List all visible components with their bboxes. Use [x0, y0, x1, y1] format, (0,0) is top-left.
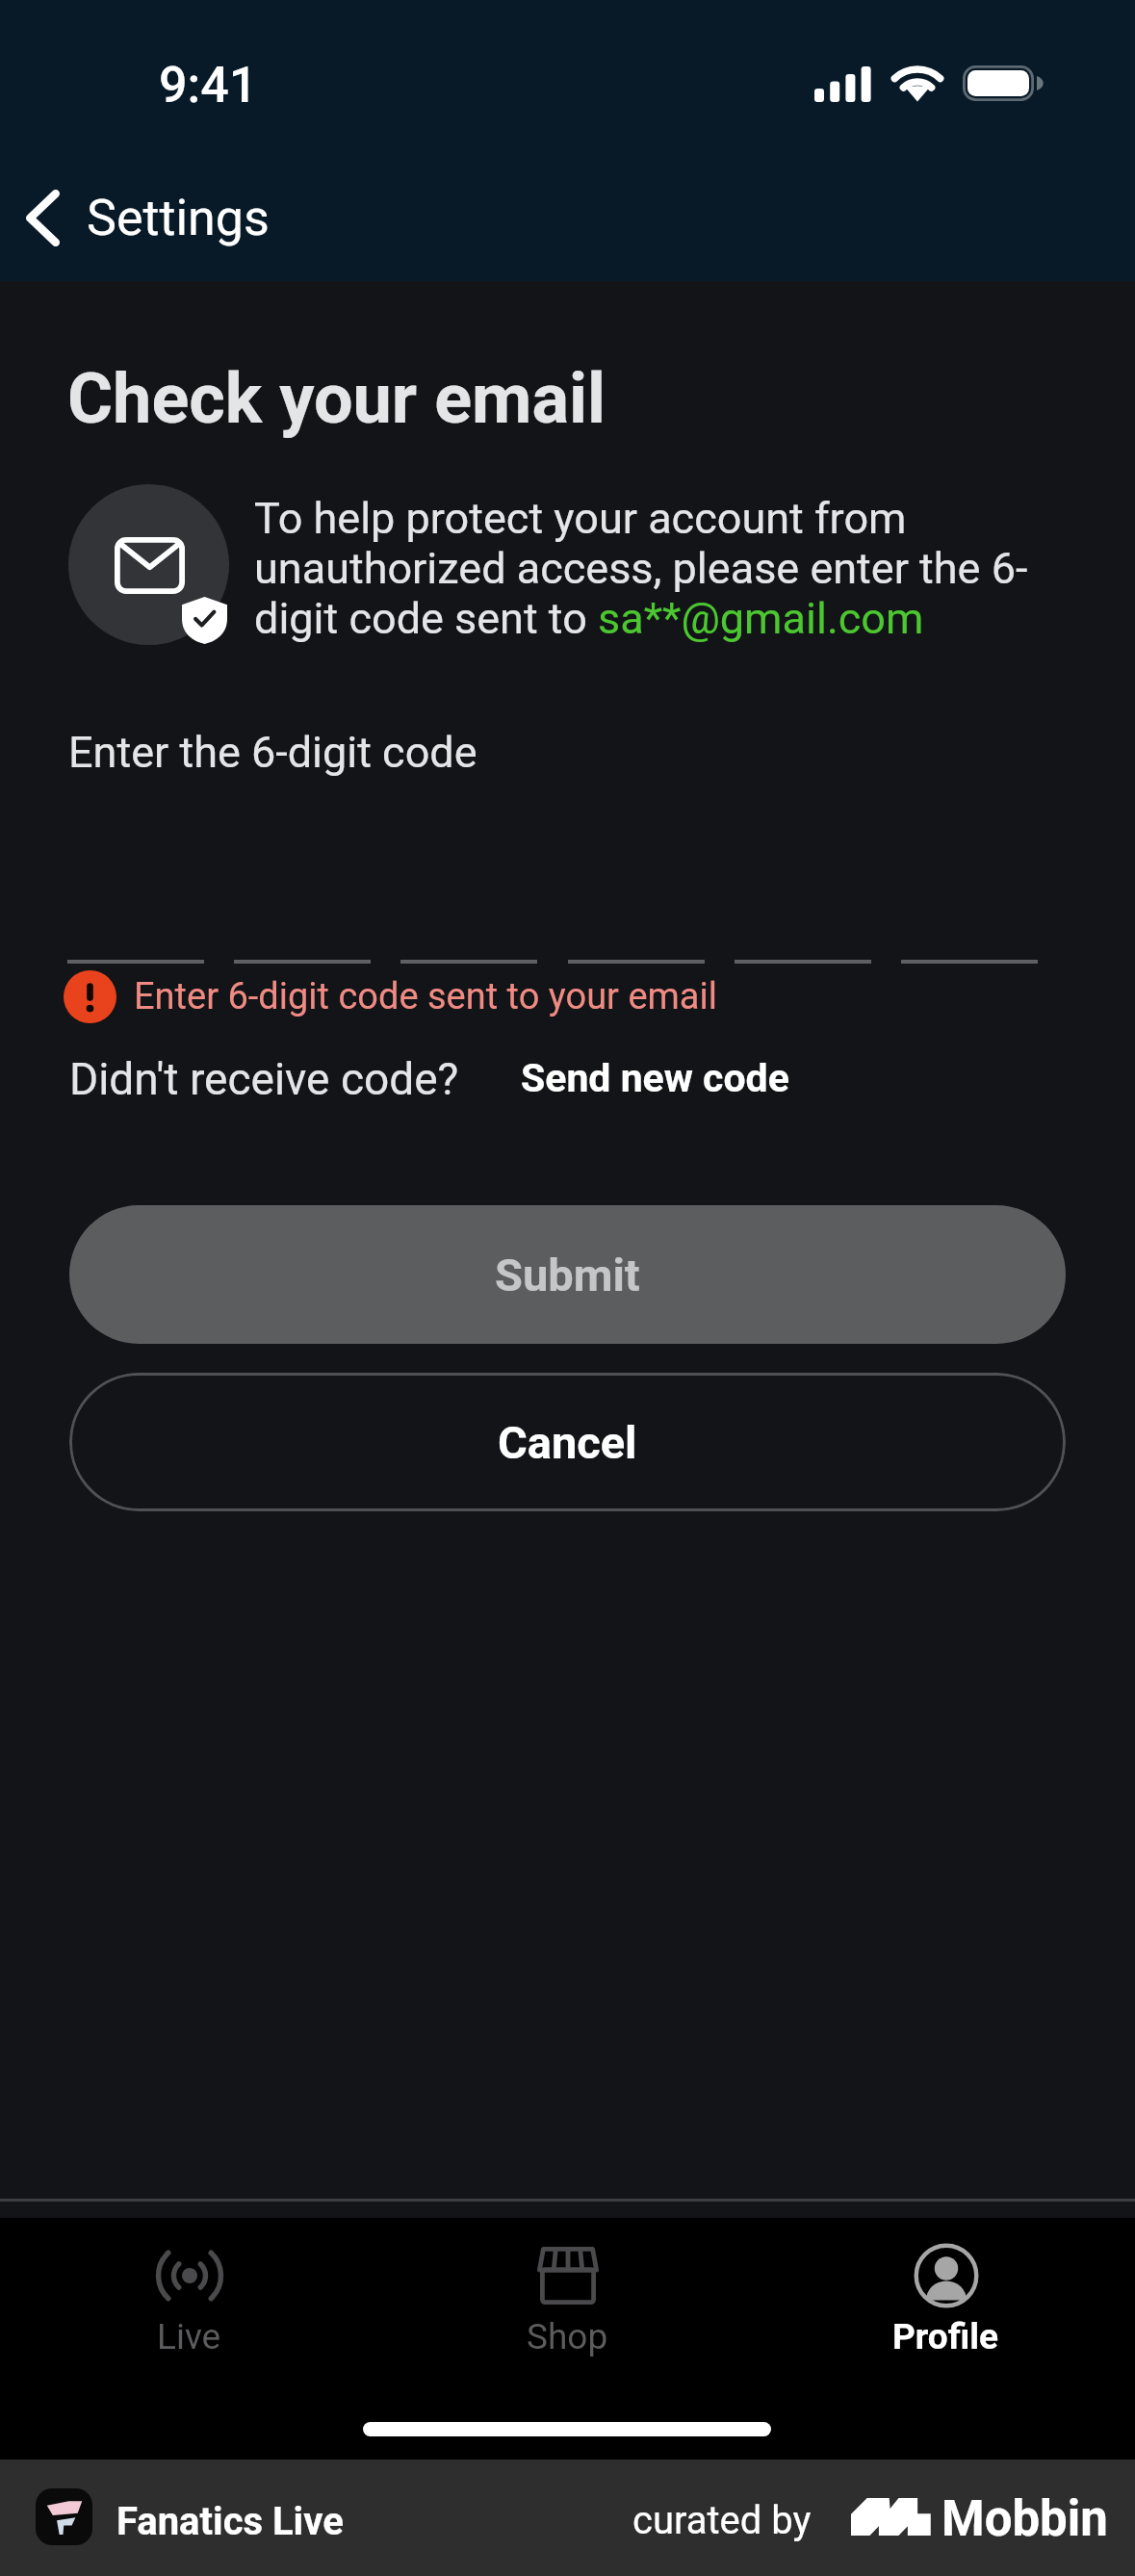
staticText: Fanatics Live: [116, 2499, 344, 2544]
button[interactable]: Send new code: [521, 1055, 789, 1101]
staticText: Mobbin: [942, 2490, 1108, 2548]
staticText: curated by: [632, 2498, 812, 2543]
button[interactable]: Code digit 5: [735, 825, 871, 964]
staticText: Enter the 6-digit code: [68, 727, 477, 778]
other: Cellular signal: [814, 65, 871, 102]
staticText: Enter 6-digit code sent to your email: [134, 975, 718, 1018]
button[interactable]: Code digit 6: [901, 825, 1038, 964]
button[interactable]: Code digit 3: [400, 825, 537, 964]
staticText: Send new code: [521, 1055, 789, 1101]
staticText: 9:41: [159, 56, 258, 115]
staticText: Shop: [527, 2316, 608, 2357]
other: Wi-Fi: [892, 65, 942, 102]
staticText: Settings: [87, 189, 270, 247]
button[interactable]: Back: [0, 162, 298, 273]
button[interactable]: Cancel: [69, 1373, 1066, 1511]
staticText: Didn't receive code?: [69, 1053, 459, 1105]
staticText: Cancel: [498, 1416, 637, 1469]
button[interactable]: Code digit 1: [67, 825, 204, 964]
other: Battery: [963, 65, 1051, 102]
staticText: Submit: [495, 1249, 640, 1301]
staticText: To help protect your account from unauth…: [254, 494, 1045, 644]
button[interactable]: Live: [0, 2218, 378, 2372]
button[interactable]: Code digit 2: [234, 825, 371, 964]
staticText: Live: [157, 2316, 221, 2357]
staticText: Profile: [892, 2316, 999, 2357]
other: Back: [26, 190, 60, 246]
button[interactable]: Submit: [69, 1205, 1066, 1344]
button[interactable]: Shop: [378, 2218, 757, 2372]
button[interactable]: Code digit 4: [568, 825, 705, 964]
button[interactable]: Profile: [757, 2218, 1135, 2372]
staticText: Check your email: [67, 358, 606, 439]
